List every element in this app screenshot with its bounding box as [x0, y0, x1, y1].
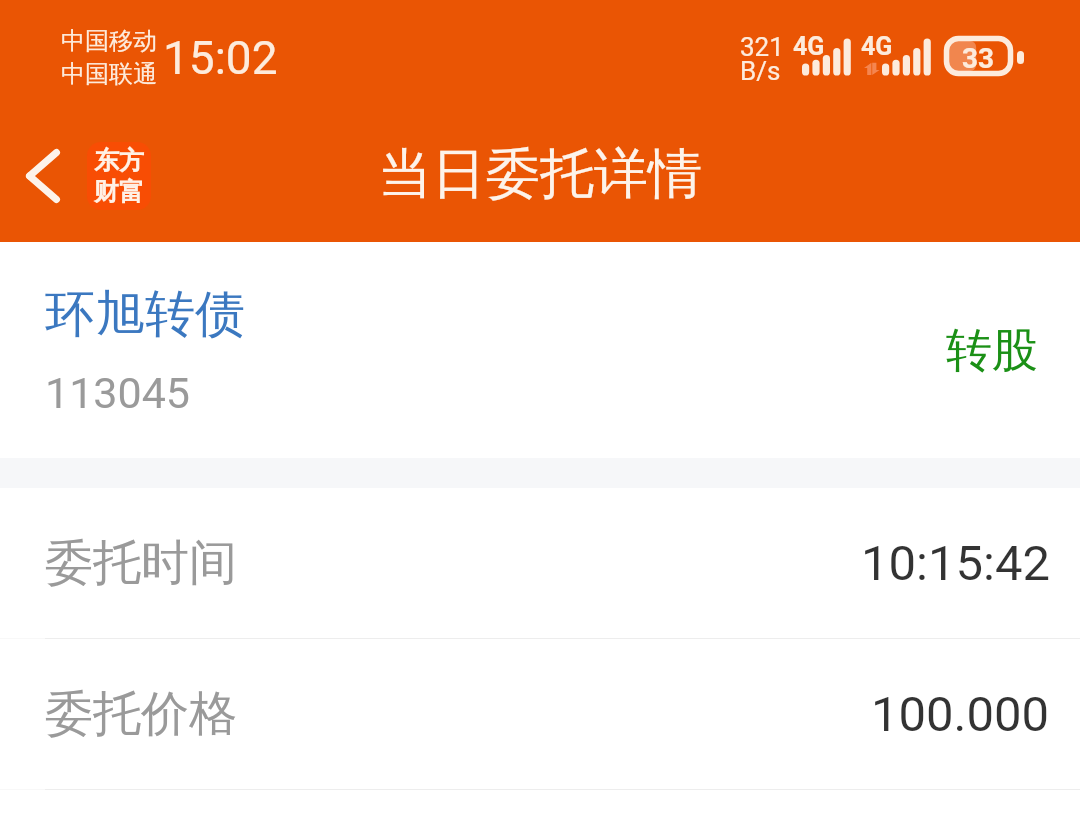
staticText: 财富: [94, 176, 144, 207]
button[interactable]: 委托价格: [0, 639, 1080, 789]
staticText: 转股: [946, 322, 1038, 380]
button[interactable]: 环旭转债: [0, 242, 1080, 458]
staticText: 321: [740, 32, 784, 62]
staticText: 委托价格: [45, 684, 237, 744]
staticText: 中国联通: [61, 59, 157, 89]
button[interactable]: 委托时间: [0, 488, 1080, 638]
button[interactable]: Back: [0, 110, 86, 242]
staticText: 环旭转债: [45, 283, 245, 346]
staticText: 100.000: [871, 686, 1050, 743]
staticText: 4G: [861, 32, 893, 61]
staticText: 33: [962, 42, 995, 75]
staticText: 委托时间: [45, 533, 237, 593]
button[interactable]: East Money logo: [87, 142, 151, 210]
staticText: 4G: [793, 32, 825, 61]
staticText: 10:15:42: [861, 535, 1050, 592]
staticText: 中国移动: [61, 26, 157, 56]
staticText: 113045: [45, 368, 190, 418]
staticText: 当日委托详情: [378, 140, 702, 208]
staticText: 15:02: [163, 31, 278, 85]
staticText: 东方: [94, 145, 144, 176]
staticText: B/s: [740, 56, 781, 86]
